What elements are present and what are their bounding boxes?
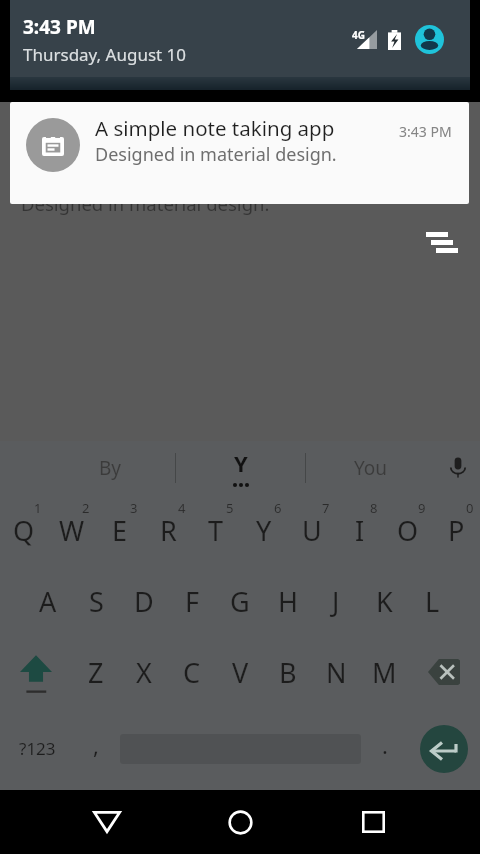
button[interactable]: Z	[72, 636, 120, 707]
button[interactable]: 3	[96, 494, 144, 565]
staticText: 1	[34, 499, 42, 517]
button[interactable]: 2	[48, 494, 96, 565]
staticText: H	[278, 583, 299, 620]
button[interactable]: 6	[240, 494, 288, 565]
button[interactable]: 4	[144, 494, 192, 565]
staticText: Y	[256, 512, 272, 549]
staticText: I	[355, 512, 365, 549]
button[interactable]: M	[360, 636, 408, 707]
staticText: ?123	[19, 737, 56, 760]
staticText: 4G	[352, 28, 365, 42]
staticText: A	[39, 583, 57, 620]
staticText: B	[279, 654, 297, 691]
button[interactable]: Y	[176, 441, 305, 494]
button[interactable]: Recents	[341, 790, 405, 854]
staticText: Thursday, August 10	[23, 43, 187, 66]
staticText: N	[326, 654, 347, 691]
staticText: O	[397, 512, 419, 549]
button[interactable]: 9	[384, 494, 432, 565]
button[interactable]: Account	[415, 25, 444, 54]
button[interactable]: F	[168, 565, 216, 636]
staticText: ,	[93, 730, 99, 760]
staticText: You	[354, 455, 388, 481]
staticText: W	[59, 512, 85, 549]
button[interactable]: C	[168, 636, 216, 707]
staticText: 4	[178, 499, 186, 517]
button[interactable]: You	[306, 441, 435, 494]
staticText: 3	[130, 499, 138, 517]
staticText: D	[134, 583, 154, 620]
staticText: T	[208, 512, 224, 549]
staticText: 3:43 PM	[399, 122, 452, 141]
staticText: G	[230, 583, 250, 620]
button[interactable]: Enter	[407, 707, 480, 790]
button[interactable]: Voice input	[435, 441, 480, 494]
button[interactable]: Shift	[0, 636, 72, 707]
staticText: F	[185, 583, 200, 620]
staticText: 0	[466, 499, 474, 517]
staticText: R	[160, 512, 177, 549]
button[interactable]: A	[24, 565, 72, 636]
button[interactable]: L	[408, 565, 456, 636]
staticText: Y	[234, 448, 248, 478]
staticText: Q	[13, 512, 35, 549]
button[interactable]: J	[312, 565, 360, 636]
staticText: K	[376, 583, 393, 620]
button[interactable]: 7	[288, 494, 336, 565]
staticText: A simple note taking app	[95, 114, 335, 142]
button[interactable]: X	[120, 636, 168, 707]
staticText: 3:43 PM	[23, 14, 96, 40]
button[interactable]: ?123	[0, 707, 74, 790]
staticText: .	[382, 730, 388, 760]
staticText: Designed in material design.	[95, 142, 337, 167]
staticText: P	[448, 512, 465, 549]
button[interactable]: Back	[75, 790, 139, 854]
button[interactable]: D	[120, 565, 168, 636]
staticText: E	[112, 512, 128, 549]
staticText: 7	[322, 499, 330, 517]
button[interactable]: 1	[0, 494, 48, 565]
staticText: 9	[418, 499, 426, 517]
staticText: L	[425, 583, 440, 620]
button[interactable]: B	[264, 636, 312, 707]
staticText: Z	[88, 654, 104, 691]
button[interactable]: V	[216, 636, 264, 707]
staticText: V	[232, 654, 249, 691]
button[interactable]: N	[312, 636, 360, 707]
button[interactable]: K	[360, 565, 408, 636]
staticText: X	[136, 654, 152, 691]
button[interactable]: 8	[336, 494, 384, 565]
staticText: C	[183, 654, 201, 691]
button[interactable]: Backspace	[408, 636, 480, 707]
staticText: U	[302, 512, 322, 549]
button[interactable]: 5	[192, 494, 240, 565]
staticText: M	[372, 654, 397, 691]
button[interactable]: By	[45, 441, 175, 494]
button[interactable]: A simple note taking app	[10, 102, 469, 204]
button[interactable]: S	[72, 565, 120, 636]
staticText: 6	[274, 499, 282, 517]
staticText: 5	[226, 499, 234, 517]
button[interactable]: G	[216, 565, 264, 636]
button[interactable]: 0	[432, 494, 480, 565]
staticText: 8	[370, 499, 378, 517]
staticText: 2	[82, 499, 90, 517]
staticText: J	[332, 583, 340, 620]
button[interactable]: H	[264, 565, 312, 636]
button[interactable]: Space	[118, 707, 363, 790]
staticText: By	[99, 455, 122, 481]
button[interactable]: Sort	[408, 214, 464, 270]
staticText: Designed in material design.	[21, 191, 270, 216]
button[interactable]: Home	[208, 790, 272, 854]
staticText: S	[89, 583, 104, 620]
